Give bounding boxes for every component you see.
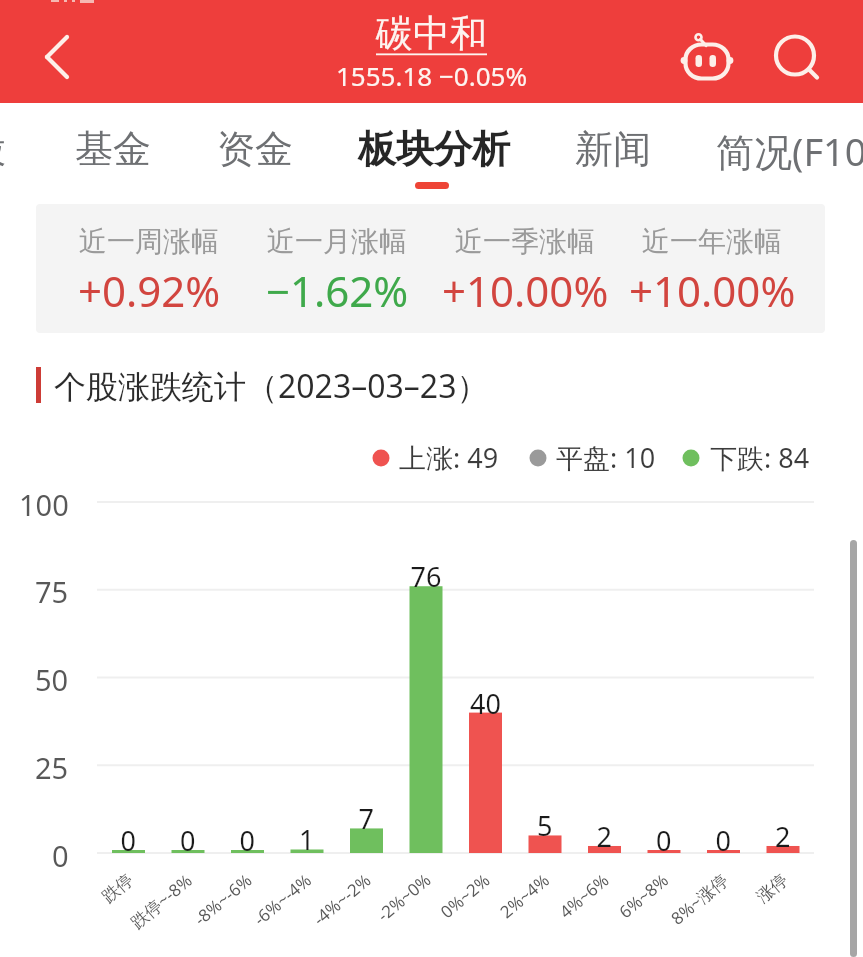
staticText: +0.92% xyxy=(78,262,221,319)
staticText: 个股涨跌统计（2023–03–23） xyxy=(54,364,489,408)
staticText: 新闻 xyxy=(575,125,651,173)
staticText: 近一周涨幅 xyxy=(79,224,219,259)
staticText: 资金 xyxy=(217,125,293,173)
staticText: 碳中和 xyxy=(376,10,487,57)
staticText: 基金 xyxy=(75,125,151,173)
staticText: 简况(F10) xyxy=(716,125,863,177)
staticText: 板块分析 xyxy=(358,125,510,173)
staticText: 近一年涨幅 xyxy=(642,224,782,259)
staticText: 股 xyxy=(0,125,6,173)
button[interactable]: 资金 xyxy=(199,103,311,188)
button[interactable]: 简况(F10) xyxy=(698,103,863,188)
button[interactable]: 板块分析 xyxy=(340,103,528,188)
staticText: 近一月涨幅 xyxy=(267,224,407,259)
staticText: +10.00% xyxy=(629,262,796,319)
staticText: +10.00% xyxy=(442,262,609,319)
staticText: 1555.18 −0.05% xyxy=(336,58,528,93)
button[interactable]: Back xyxy=(28,27,78,77)
button[interactable]: 基金 xyxy=(57,103,169,188)
button[interactable]: AI assistant xyxy=(676,28,736,88)
button[interactable]: 股 xyxy=(0,103,24,188)
button[interactable]: 新闻 xyxy=(557,103,669,188)
staticText: −1.62% xyxy=(266,262,409,319)
button[interactable]: Search xyxy=(765,26,825,86)
staticText: 近一季涨幅 xyxy=(455,224,595,259)
